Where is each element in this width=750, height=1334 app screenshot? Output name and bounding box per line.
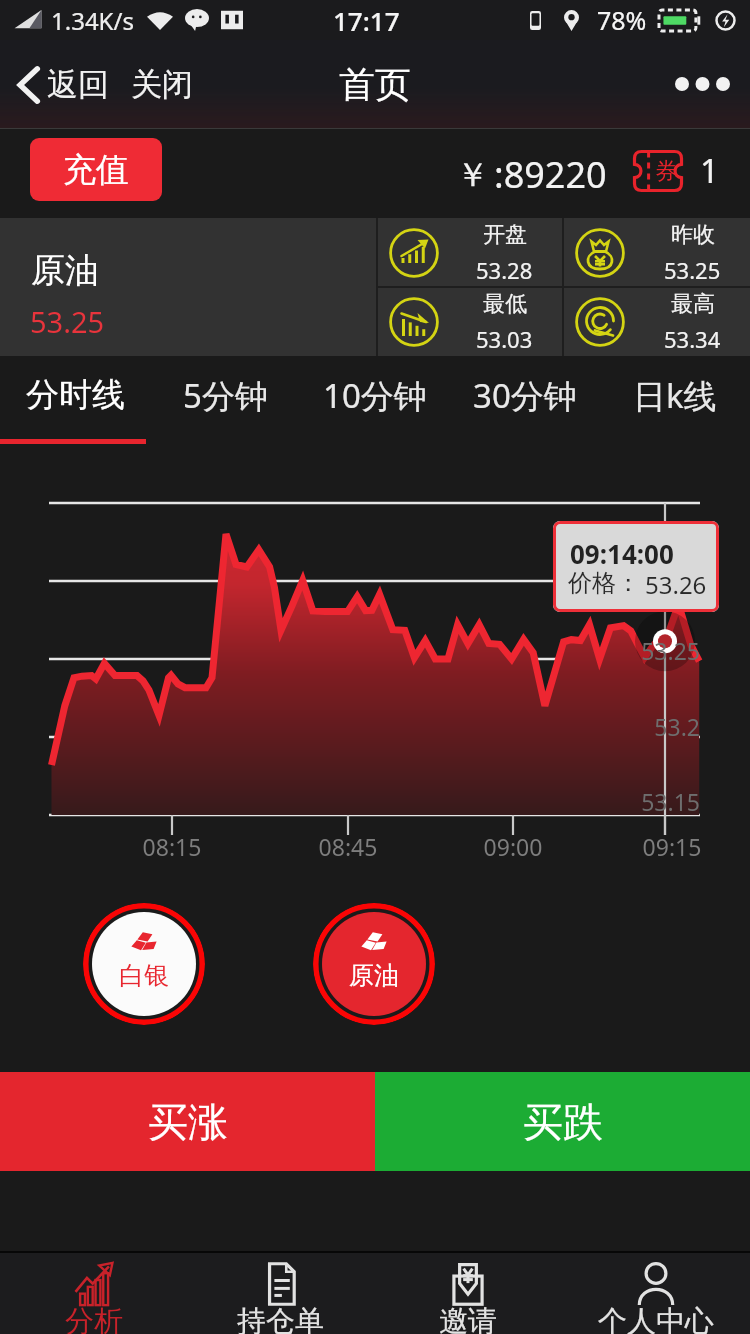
staticText: 08:15 [127, 831, 217, 862]
staticText: 买跌 [523, 1097, 603, 1147]
button[interactable]: 10分钟 [300, 356, 450, 444]
staticText: 券 [655, 157, 678, 186]
staticText: 53.34 [664, 324, 721, 354]
staticText: 最高 [671, 290, 715, 318]
staticText: 53.25 [664, 255, 721, 285]
staticText: 08:45 [303, 831, 393, 862]
staticText: 53.25 [620, 635, 700, 666]
button[interactable]: More options [655, 56, 750, 112]
staticText: ￥ [456, 154, 489, 196]
staticText: 日k线 [633, 373, 717, 418]
button[interactable]: 邀请 [374, 1251, 562, 1334]
staticText: 17:17 [333, 3, 400, 38]
staticText: 原油 [31, 249, 99, 292]
staticText: 1.34K/s [51, 4, 134, 37]
staticText: 持仓单 [237, 1303, 324, 1334]
staticText: 09:15 [627, 831, 717, 862]
button[interactable]: 最高 [564, 288, 750, 356]
staticText: 买涨 [148, 1097, 228, 1147]
button[interactable]: 昨收 [564, 218, 750, 287]
button[interactable]: 原油 [313, 903, 435, 1025]
staticText: 30分钟 [473, 373, 577, 418]
button[interactable]: 关闭 [124, 51, 200, 118]
button[interactable]: 返回 [0, 51, 117, 118]
staticText: 个人中心 [598, 1303, 714, 1334]
button[interactable]: 分时线 [0, 356, 150, 444]
staticText: 53.25 [30, 302, 105, 341]
staticText: 53.2 [620, 711, 700, 742]
button[interactable]: 最低 [378, 288, 562, 356]
staticText: 昨收 [671, 221, 715, 249]
button[interactable]: 30分钟 [450, 356, 600, 444]
staticText: 返回 [47, 65, 109, 104]
button[interactable]: 开盘 [378, 218, 562, 287]
button[interactable]: 白银 [83, 903, 205, 1025]
button[interactable]: 日k线 [600, 356, 750, 444]
staticText: 价格： [568, 568, 640, 598]
button[interactable]: 5分钟 [150, 356, 300, 444]
staticText: 10分钟 [323, 373, 427, 418]
staticText: 分析 [65, 1303, 123, 1334]
button[interactable]: 持仓单 [187, 1251, 374, 1334]
staticText: 53.15 [620, 786, 700, 817]
staticText: 开盘 [483, 221, 527, 249]
staticText: 53.26 [645, 568, 707, 601]
button[interactable]: 充值 [30, 138, 162, 201]
staticText: 最低 [483, 290, 527, 318]
staticText: 09:14:00 [570, 536, 674, 571]
staticText: 53.28 [476, 255, 533, 285]
staticText: :89220 [494, 150, 607, 199]
staticText: 关闭 [131, 65, 193, 104]
button[interactable]: 券 [633, 148, 719, 193]
staticText: 1 [700, 148, 719, 193]
staticText: 原油 [349, 960, 399, 991]
staticText: 邀请 [439, 1303, 497, 1334]
button[interactable]: 买跌 [375, 1072, 750, 1171]
staticText: 78% [597, 3, 647, 37]
staticText: 充值 [63, 149, 129, 191]
staticText: 分时线 [26, 374, 125, 416]
staticText: 09:00 [468, 831, 558, 862]
staticText: 白银 [119, 960, 169, 991]
button[interactable]: 买涨 [0, 1072, 375, 1171]
staticText: 5分钟 [183, 373, 268, 418]
button[interactable]: 个人中心 [562, 1251, 750, 1334]
button[interactable]: 分析 [0, 1251, 187, 1334]
staticText: 53.3 [620, 558, 700, 589]
staticText: 53.03 [476, 324, 533, 354]
staticText: 首页 [339, 62, 411, 107]
